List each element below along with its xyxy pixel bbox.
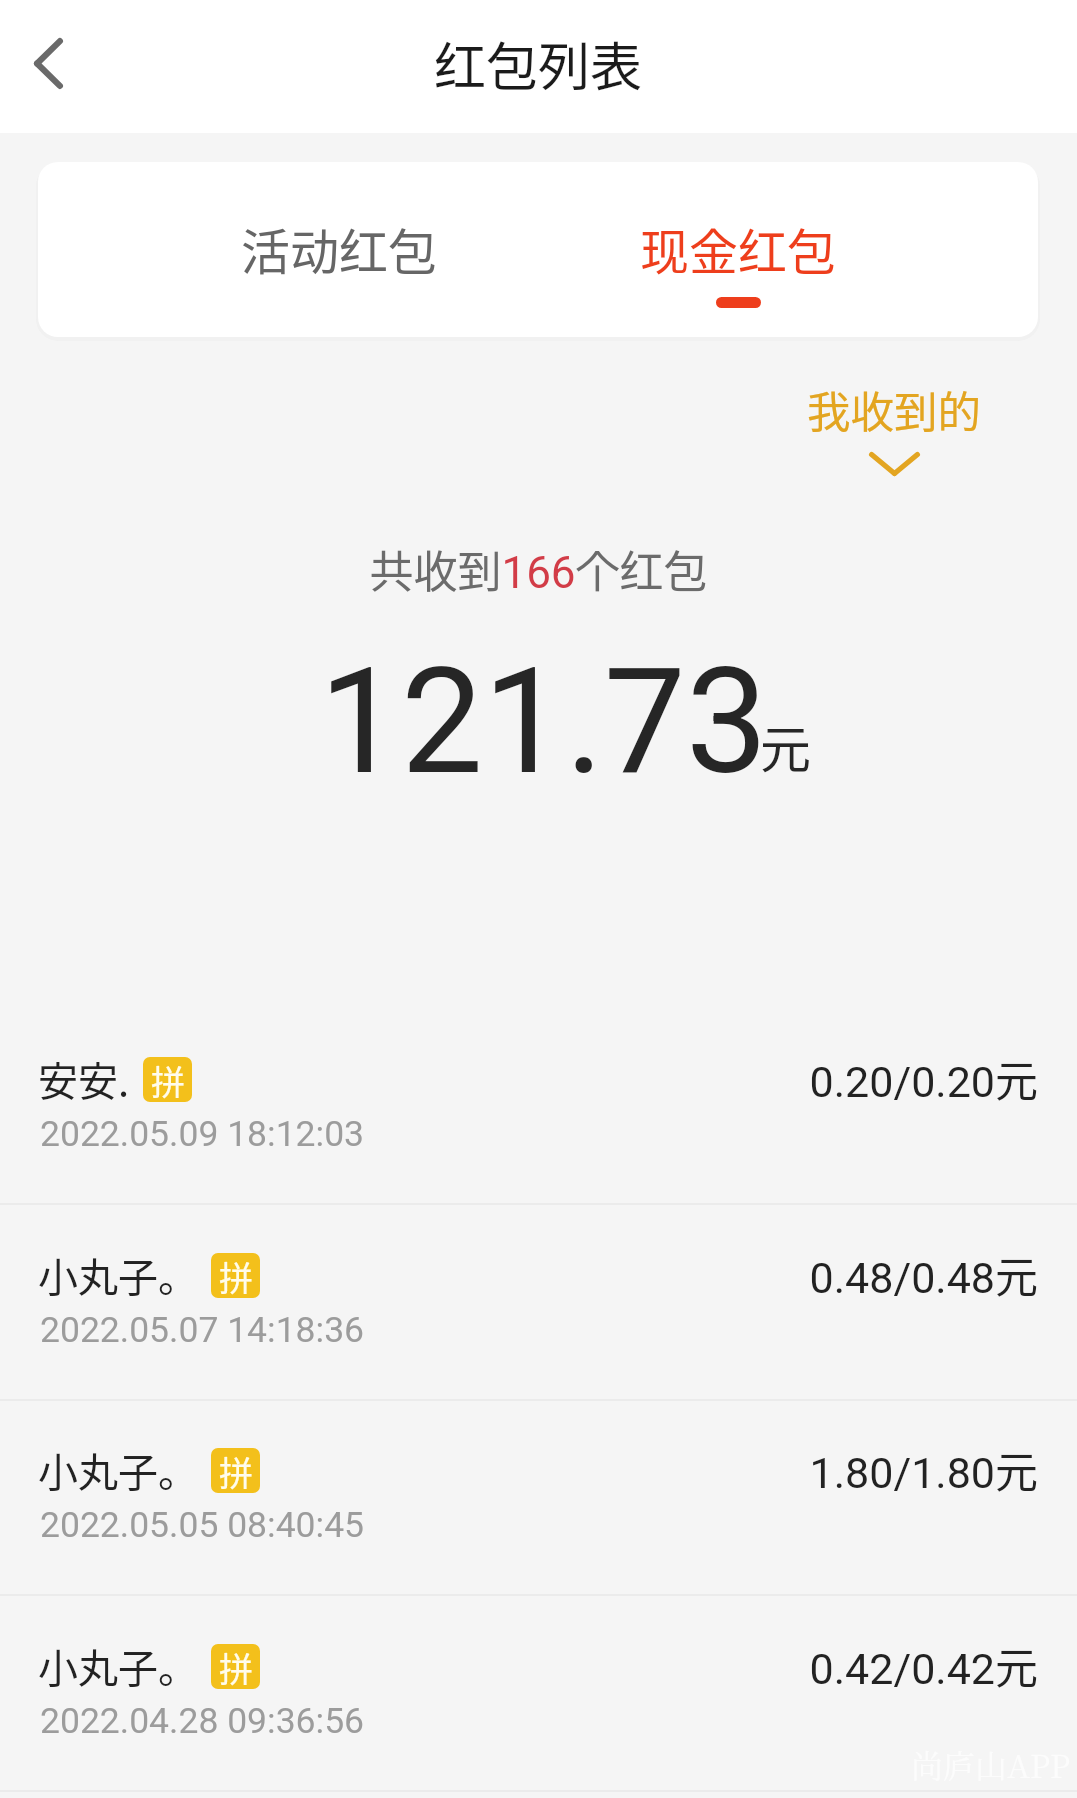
button[interactable]: 现金红包 xyxy=(538,162,1038,337)
staticText: 1.80/1.80元 xyxy=(0,1438,1038,1500)
button[interactable]: Back xyxy=(6,22,96,112)
staticText: 拼 xyxy=(219,1644,253,1688)
staticText: 121.73 xyxy=(319,637,768,808)
staticText: 小丸子。 xyxy=(38,1637,198,1695)
staticText: 0.20/0.20元 xyxy=(0,1047,1038,1109)
button[interactable]: 小丸子。 xyxy=(0,1205,1077,1401)
staticText: 安安. xyxy=(38,1050,130,1108)
button[interactable]: 活动红包 xyxy=(38,162,538,337)
staticText: 拼 xyxy=(219,1448,253,1492)
staticText: 0.48/0.48元 xyxy=(0,1243,1038,1305)
staticText: 拼 xyxy=(151,1057,185,1101)
staticText: 共收到166个红包 xyxy=(0,537,1077,601)
staticText: 0.42/0.42元 xyxy=(0,1634,1038,1696)
staticText: 拼 xyxy=(219,1253,253,1297)
button[interactable]: 安安. xyxy=(0,1009,1077,1205)
button[interactable]: 小丸子。 xyxy=(0,1400,1077,1596)
staticText: 现金红包 xyxy=(640,213,837,284)
staticText: 小丸子。 xyxy=(38,1246,198,1304)
staticText: 2022.05.07 14:18:36 xyxy=(40,1309,365,1351)
button[interactable]: 小丸子。 xyxy=(0,1596,1077,1792)
staticText: 小丸子。 xyxy=(38,1441,198,1499)
staticText: 2022.05.09 18:12:03 xyxy=(40,1113,365,1155)
staticText: 元 xyxy=(760,709,812,783)
staticText: 红包列表 xyxy=(434,26,643,101)
staticText: 2022.04.28 09:36:56 xyxy=(40,1700,365,1742)
button[interactable]: 我收到的 xyxy=(778,378,1010,476)
staticText: 我收到的 xyxy=(807,378,981,441)
staticText: 活动红包 xyxy=(241,213,438,284)
staticText: 2022.05.05 08:40:45 xyxy=(40,1504,365,1546)
